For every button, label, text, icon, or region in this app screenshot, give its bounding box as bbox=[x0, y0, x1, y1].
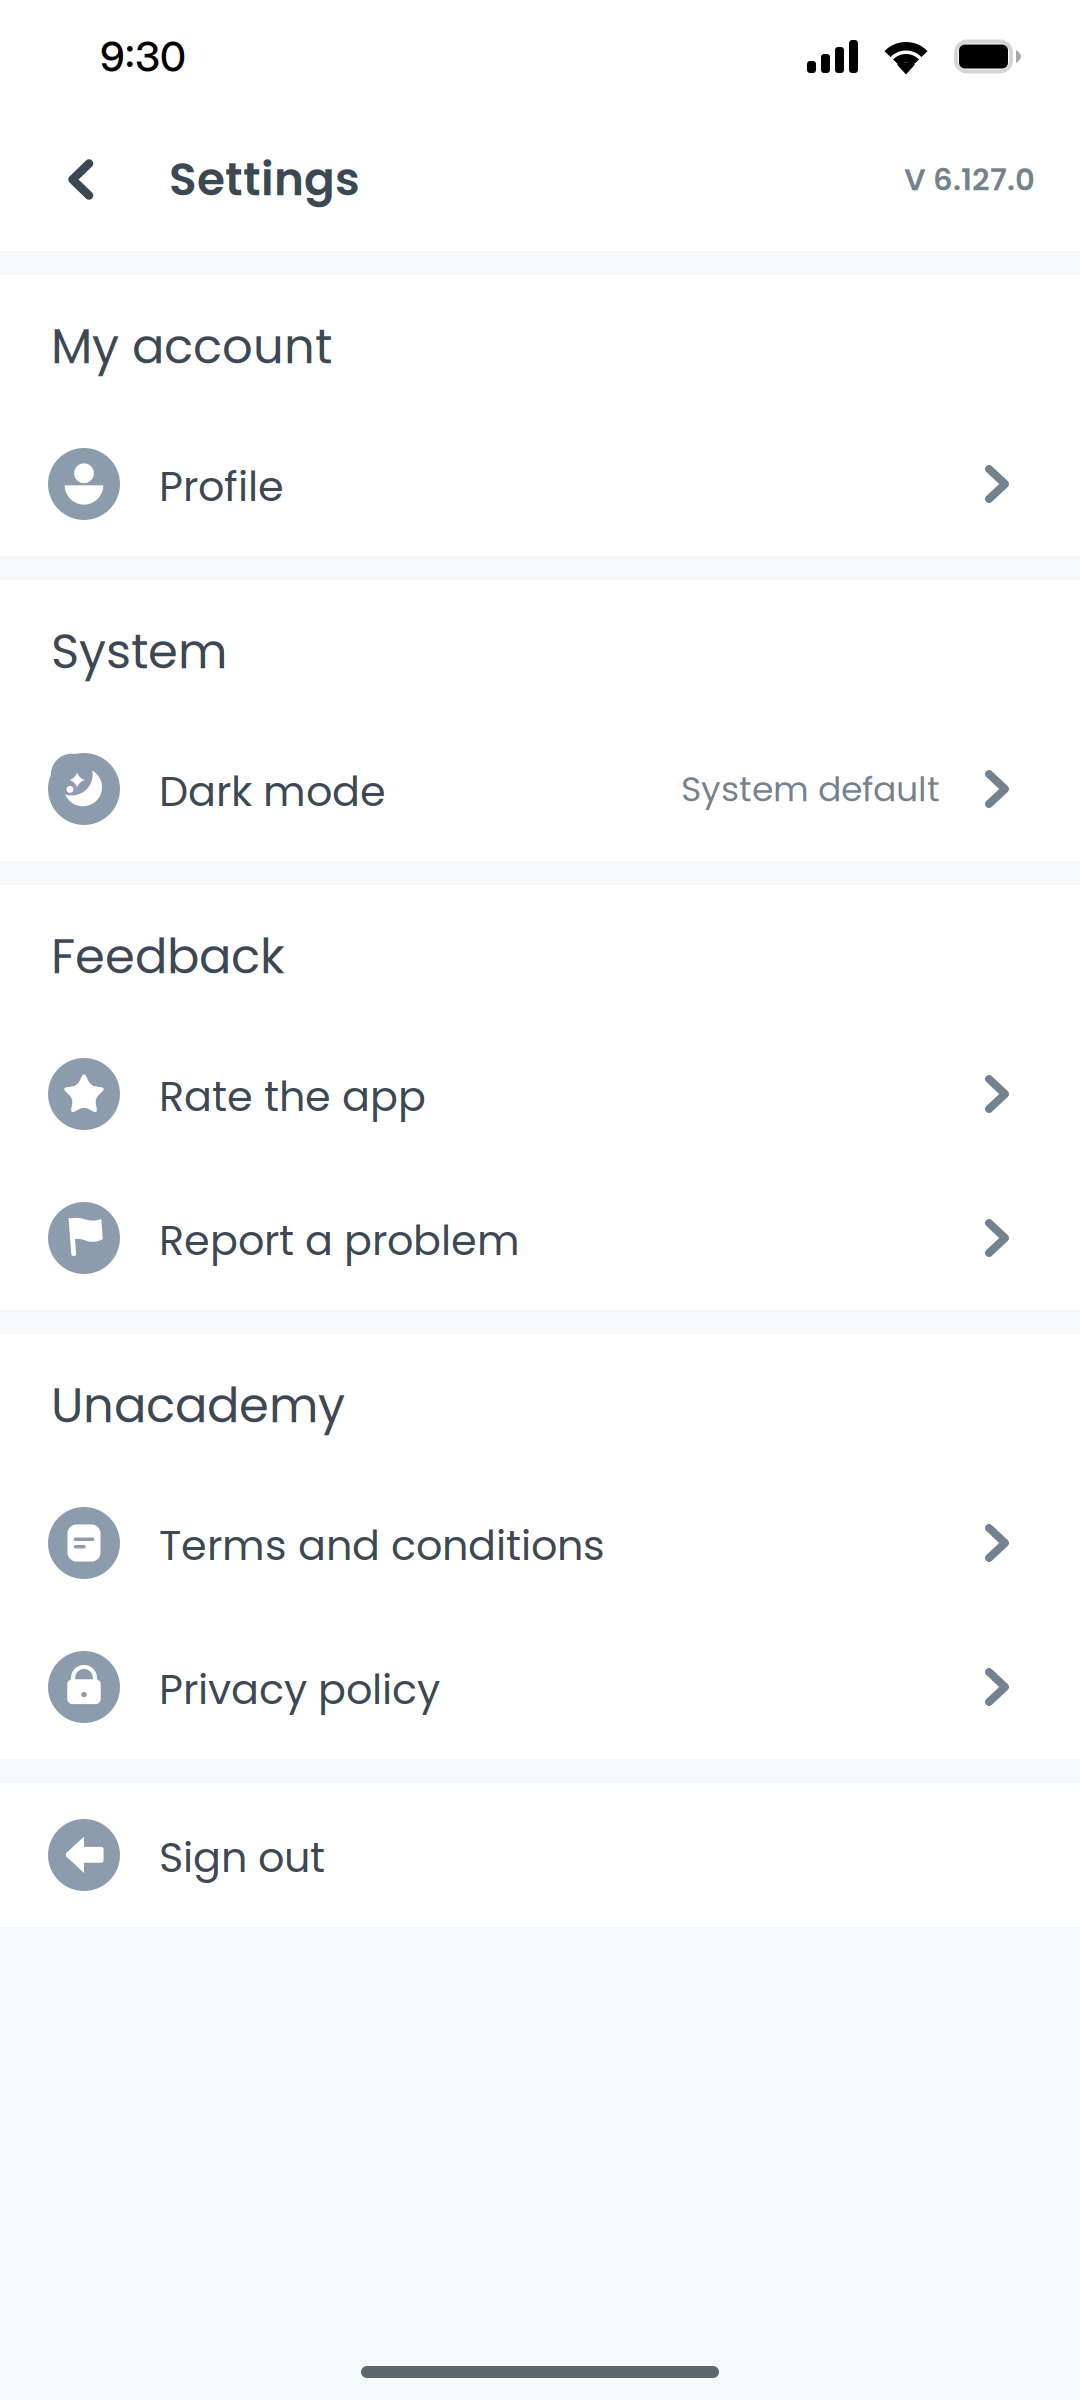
staticText: Terms and conditions bbox=[159, 1517, 605, 1574]
staticText: Sign out bbox=[159, 1829, 325, 1886]
staticText: System bbox=[51, 618, 227, 685]
staticText: 9:30 bbox=[100, 31, 186, 81]
button[interactable]: Rate the app bbox=[0, 1022, 1080, 1166]
staticText: Report a problem bbox=[159, 1212, 520, 1269]
button[interactable]: Back bbox=[0, 108, 149, 251]
staticText: System default bbox=[681, 765, 940, 813]
staticText: Rate the app bbox=[159, 1068, 426, 1125]
staticText: Privacy policy bbox=[159, 1661, 440, 1718]
button[interactable]: Sign out bbox=[0, 1783, 1080, 1927]
staticText: Feedback bbox=[51, 923, 285, 990]
button[interactable]: Dark mode bbox=[0, 717, 1080, 861]
staticText: My account bbox=[51, 313, 332, 380]
button[interactable]: Privacy policy bbox=[0, 1615, 1080, 1759]
staticText: Unacademy bbox=[51, 1372, 345, 1439]
staticText: Dark mode bbox=[159, 763, 386, 820]
button[interactable]: Report a problem bbox=[0, 1166, 1080, 1310]
button[interactable]: Terms and conditions bbox=[0, 1471, 1080, 1615]
staticText: Settings bbox=[169, 148, 360, 211]
button[interactable]: Profile bbox=[0, 412, 1080, 556]
staticText: V 6.127.0 bbox=[904, 158, 1035, 201]
staticText: Profile bbox=[159, 458, 284, 515]
